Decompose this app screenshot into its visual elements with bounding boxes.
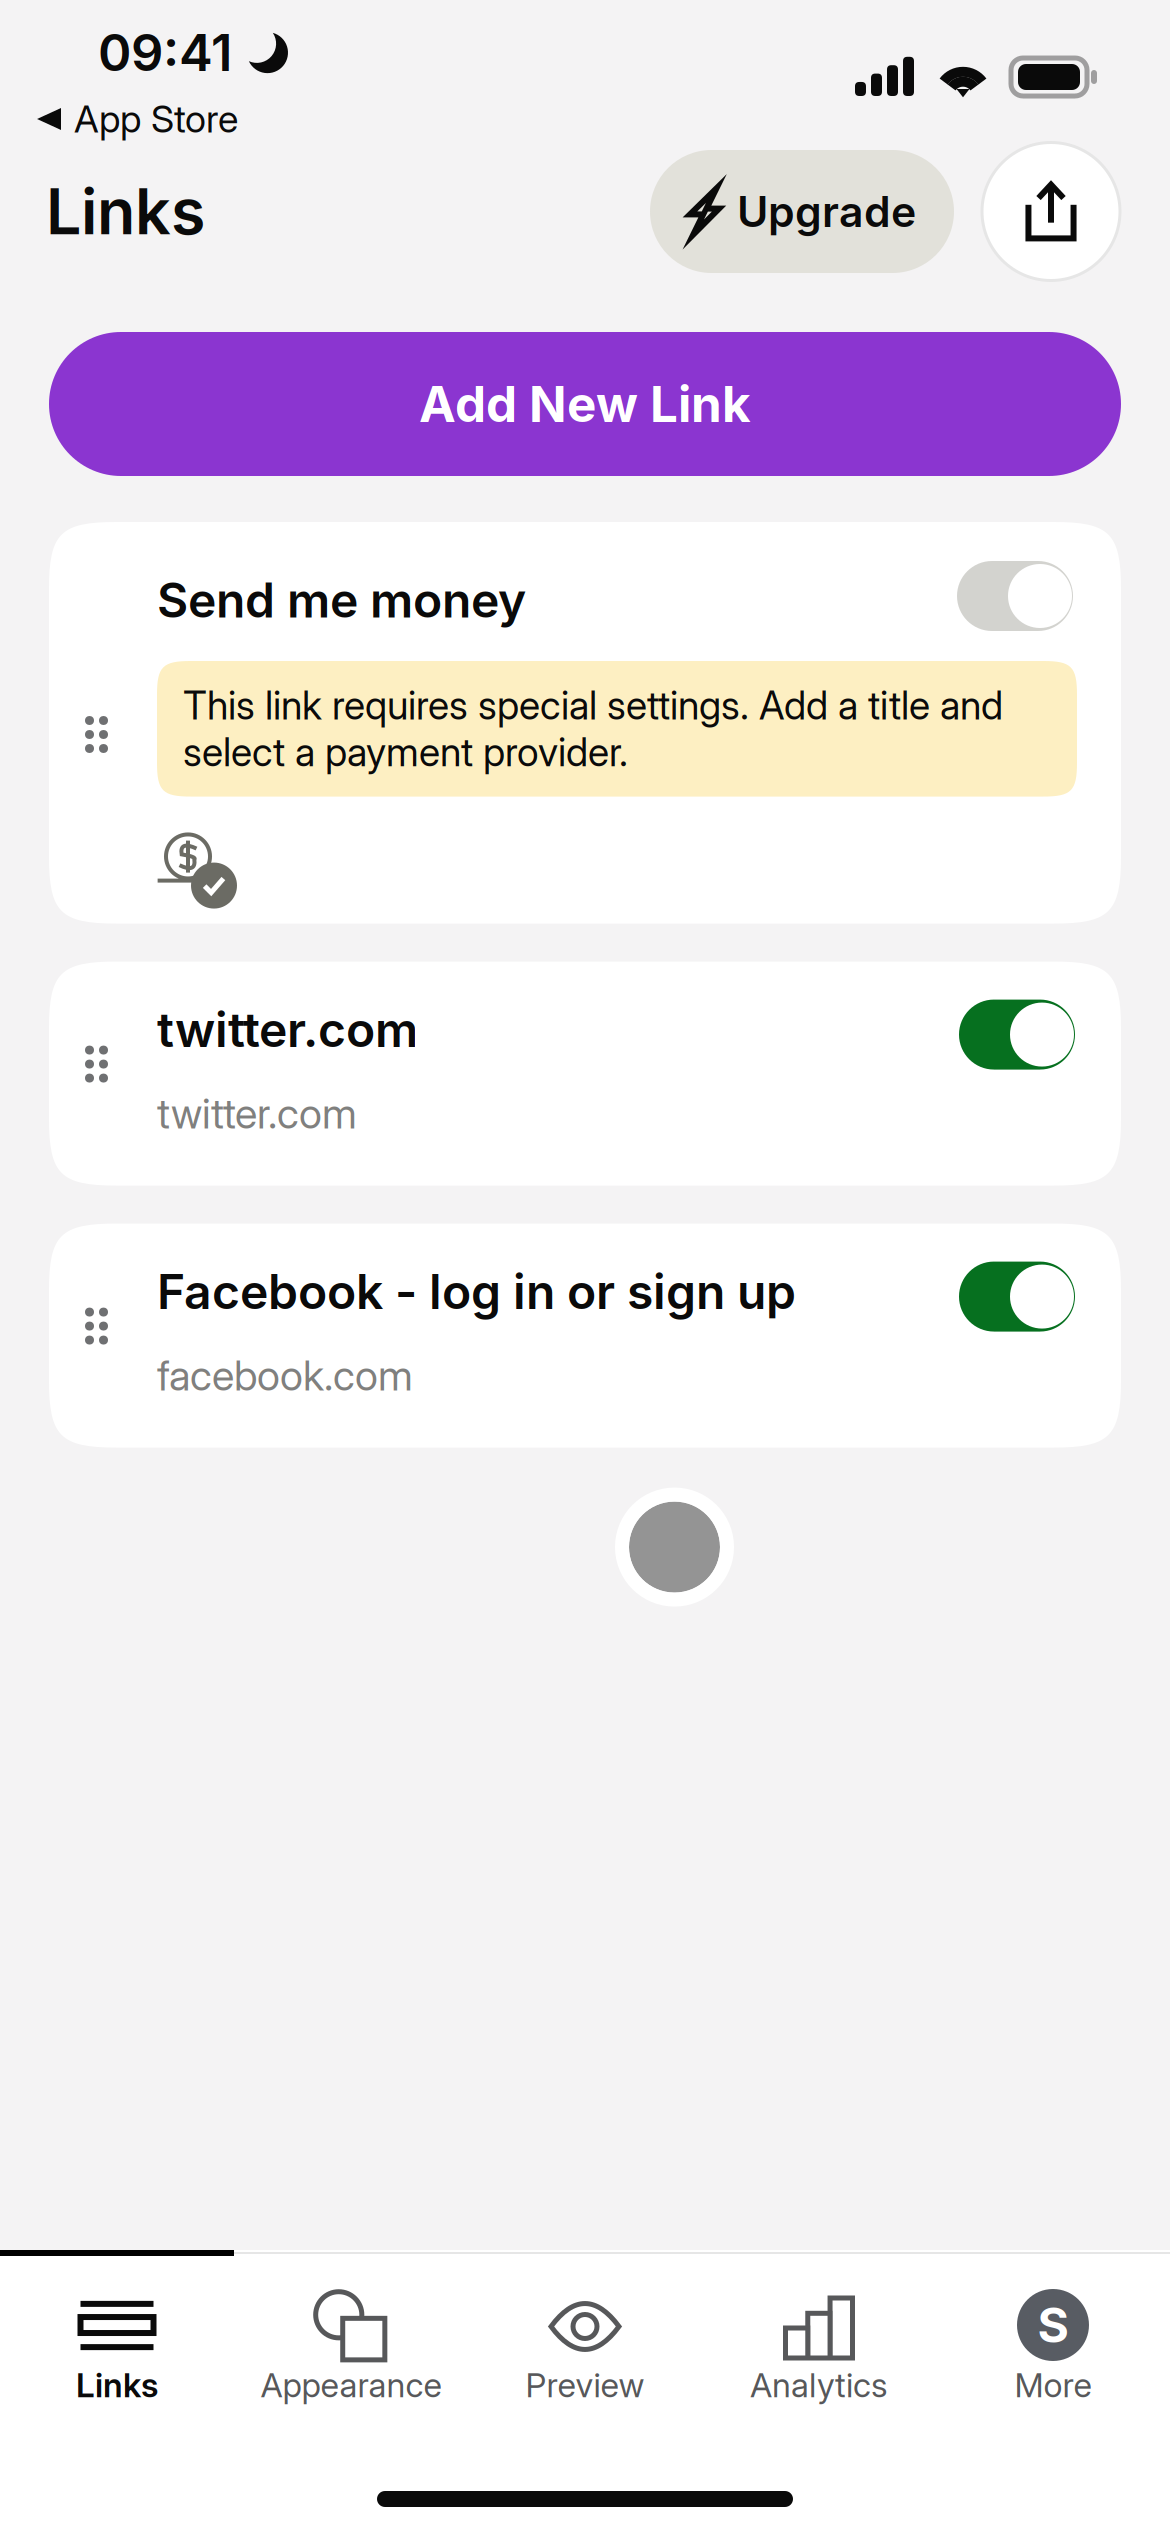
staticText: Send me money	[157, 571, 526, 629]
staticText: Facebook - log in or sign up	[157, 1263, 796, 1321]
staticText: Preview	[525, 2365, 644, 2405]
button[interactable]: App Store	[37, 90, 238, 148]
button[interactable]: Upgrade	[650, 150, 954, 273]
button[interactable]: Add New Link	[49, 332, 1121, 476]
staticText: Analytics	[750, 2365, 888, 2405]
staticText: 09:41	[98, 22, 232, 83]
staticText: More	[1014, 2365, 1091, 2405]
staticText: Upgrade	[737, 186, 916, 237]
button[interactable]: Share	[982, 142, 1120, 280]
staticText: This link requires special settings. Add…	[183, 682, 1003, 776]
staticText: App Store	[74, 96, 238, 142]
button[interactable]: Appearance	[234, 2256, 468, 2408]
button[interactable]: Preview	[468, 2256, 702, 2408]
staticText: Links	[46, 174, 205, 249]
staticText: S	[1037, 2296, 1068, 2354]
staticText: Appearance	[260, 2365, 441, 2405]
staticText: twitter.com	[157, 1001, 418, 1059]
staticText: facebook.com	[157, 1351, 413, 1401]
staticText: Links	[76, 2365, 158, 2405]
staticText: Add New Link	[419, 374, 751, 434]
staticText: twitter.com	[157, 1089, 357, 1139]
button[interactable]: Analytics	[702, 2256, 936, 2408]
button[interactable]: S	[936, 2256, 1170, 2408]
button[interactable]: Links	[0, 2256, 234, 2408]
